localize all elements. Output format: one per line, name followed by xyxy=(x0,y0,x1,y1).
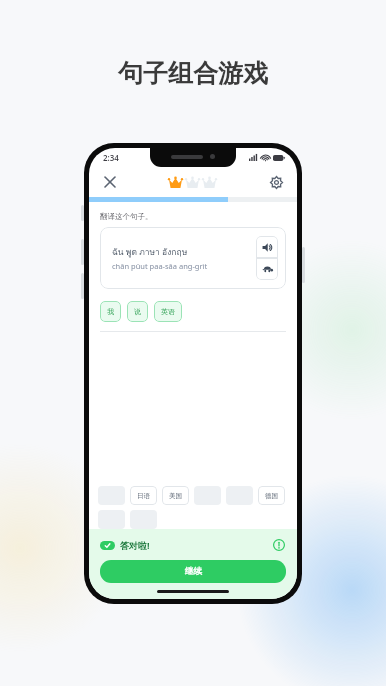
staticText: 翻译这个句子。 xyxy=(100,212,153,221)
staticText: 日语 xyxy=(137,492,150,500)
staticText: 美国 xyxy=(169,492,182,500)
button[interactable]: 德国 xyxy=(258,486,285,505)
button[interactable]: Play slowly xyxy=(256,258,278,280)
staticText: chǎn pûut paa-sǎa ang-grìt xyxy=(112,261,208,271)
button[interactable]: 继续 xyxy=(100,560,286,583)
staticText: 德国 xyxy=(265,492,278,500)
button[interactable]: Report xyxy=(272,538,286,552)
button[interactable]: Close xyxy=(99,171,121,193)
button[interactable]: 日语 xyxy=(130,486,157,505)
staticText: 句子组合游戏 xyxy=(118,58,268,89)
button[interactable]: 美国 xyxy=(162,486,189,505)
button[interactable]: Settings xyxy=(265,171,287,193)
button[interactable]: 说 xyxy=(127,301,148,322)
staticText: 英语 xyxy=(161,307,175,316)
staticText: 我 xyxy=(107,307,114,316)
button[interactable]: Play audio xyxy=(256,236,278,258)
staticText: ฉัน พูด ภาษา อังกฤษ xyxy=(112,245,188,259)
staticText: 2:34 xyxy=(103,152,119,163)
button[interactable]: 英语 xyxy=(154,301,182,322)
staticText: 说 xyxy=(134,307,141,316)
staticText: 继续 xyxy=(185,566,202,577)
staticText: 答对啦! xyxy=(120,539,150,551)
button[interactable]: 我 xyxy=(100,301,121,322)
